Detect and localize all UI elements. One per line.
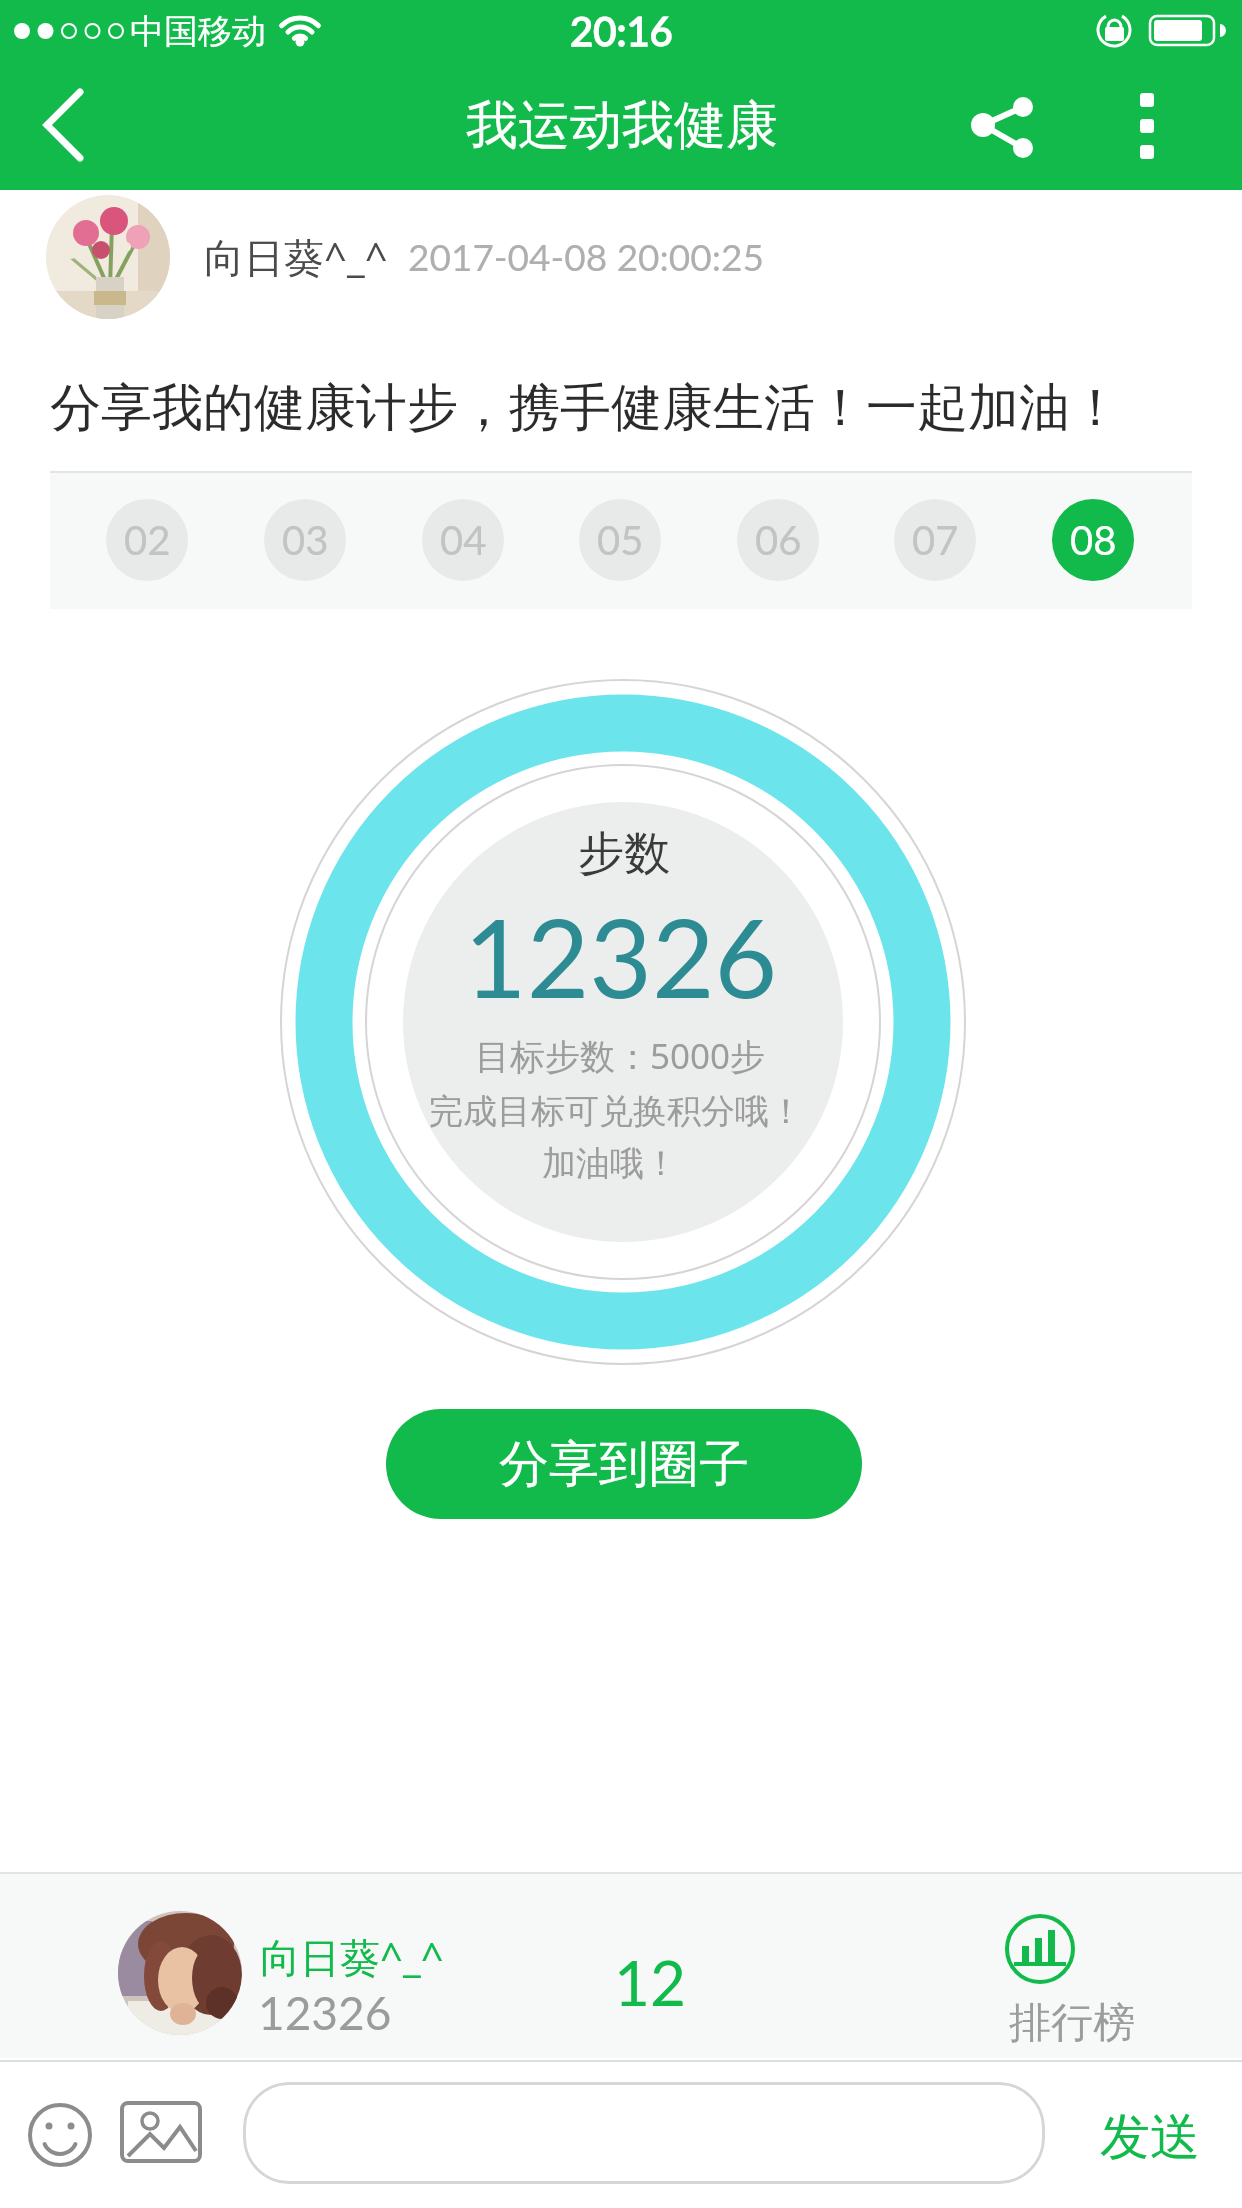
button[interactable]: 07 <box>894 499 976 581</box>
staticText: 步数 <box>578 825 670 883</box>
button[interactable] <box>120 2101 204 2165</box>
staticText: 排行榜 <box>1009 1997 1135 2050</box>
button[interactable]: 发送 <box>1078 2102 1222 2172</box>
button[interactable] <box>118 1911 242 2035</box>
button[interactable]: 03 <box>264 499 346 581</box>
staticText: 04 <box>440 516 487 564</box>
button[interactable]: 04 <box>422 499 504 581</box>
button[interactable]: 05 <box>579 499 661 581</box>
staticText: 06 <box>755 516 802 564</box>
staticText: 05 <box>597 516 644 564</box>
button[interactable] <box>26 2101 94 2169</box>
staticText: 中国移动 <box>130 10 266 53</box>
staticText: 07 <box>912 516 959 564</box>
button[interactable] <box>243 2082 1045 2184</box>
staticText: 分享到圈子 <box>499 1433 749 1496</box>
staticText: 02 <box>124 516 171 564</box>
staticText: 03 <box>282 516 329 564</box>
button[interactable] <box>15 78 115 173</box>
staticText: 完成目标可兑换积分哦！ <box>429 1090 803 1133</box>
staticText: 目标步数：5000步 <box>475 1032 766 1080</box>
staticText: 加油哦！ <box>542 1142 678 1185</box>
staticText: 发送 <box>1100 2106 1200 2169</box>
staticText: 向日葵^_^ <box>260 1929 444 1984</box>
staticText: 向日葵^_^ <box>204 229 388 284</box>
staticText: 12 <box>614 1945 686 2019</box>
staticText: 12326 <box>464 891 778 1021</box>
button[interactable] <box>1105 75 1190 175</box>
staticText: 我运动我健康 <box>466 93 778 159</box>
staticText: 20:16 <box>570 7 673 55</box>
button[interactable]: 06 <box>737 499 819 581</box>
button[interactable] <box>985 1890 1160 2055</box>
button[interactable]: 02 <box>106 499 188 581</box>
staticText: 08 <box>1070 516 1117 564</box>
staticText: 12326 <box>258 1985 392 2040</box>
button[interactable]: 08 <box>1052 499 1134 581</box>
staticText: 分享我的健康计步，携手健康生活！一起加油！ <box>50 376 1121 440</box>
button[interactable] <box>945 80 1060 170</box>
button[interactable]: 分享到圈子 <box>386 1409 862 1519</box>
staticText: 2017-04-08 20:00:25 <box>408 234 764 278</box>
button[interactable] <box>46 195 170 319</box>
